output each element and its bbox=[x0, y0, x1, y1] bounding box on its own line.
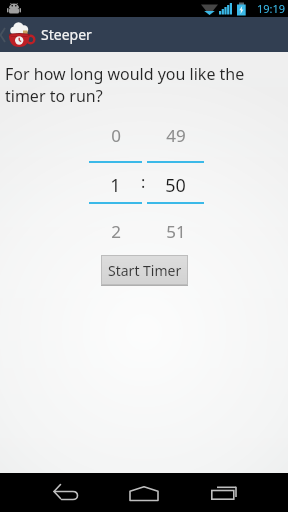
button[interactable] bbox=[129, 486, 159, 502]
button[interactable]: 49 bbox=[147, 114, 204, 240]
button[interactable] bbox=[211, 486, 237, 501]
staticText: 51 bbox=[166, 220, 186, 243]
button[interactable]: Start Timer bbox=[101, 255, 188, 285]
staticText: For how long would you like the timer to… bbox=[5, 63, 245, 107]
button[interactable]: 0 bbox=[89, 114, 142, 240]
staticText: 2 bbox=[111, 220, 121, 243]
staticText: 49 bbox=[166, 124, 186, 147]
staticText: 50 bbox=[165, 173, 186, 198]
staticText: 1 bbox=[110, 173, 121, 198]
staticText: Start Timer bbox=[108, 261, 182, 280]
button[interactable]: Steeper bbox=[0, 17, 288, 52]
button[interactable] bbox=[52, 482, 79, 501]
staticText: 19:19 bbox=[257, 1, 286, 16]
staticText: 0 bbox=[111, 124, 121, 147]
staticText: : bbox=[141, 171, 147, 193]
staticText: Steeper bbox=[41, 25, 92, 44]
